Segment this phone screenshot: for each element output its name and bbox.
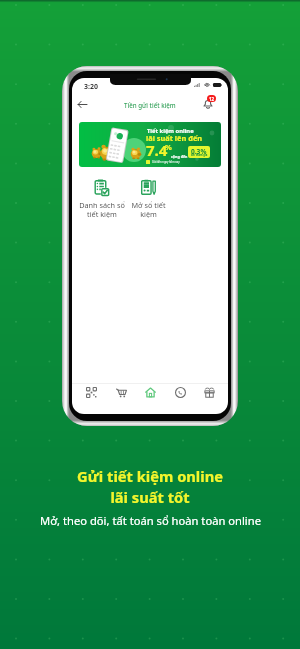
- staticText: Gửi tiết kiệm online: [77, 466, 223, 486]
- staticText: %: [165, 142, 172, 152]
- staticText: Mở sổ tiết kiệm: [131, 200, 166, 219]
- staticText: khi tham gia: [191, 153, 208, 157]
- staticText: Danh sách sổ tiết kiệm: [79, 200, 125, 219]
- staticText: Mở, theo dõi, tất toán sổ hoàn toàn onli…: [40, 513, 261, 528]
- button[interactable]: Mở sổ tiết kiệm: [125, 179, 172, 219]
- button[interactable]: Scan QR: [79, 384, 103, 401]
- button[interactable]: Back: [76, 98, 89, 111]
- staticText: lãi suất tốt: [110, 487, 190, 507]
- button[interactable]: Gifts: [197, 384, 221, 401]
- staticText: Tiết kiệm online: [147, 127, 194, 135]
- staticText: 3:20: [84, 82, 98, 92]
- button[interactable]: Shop: [109, 384, 133, 401]
- button[interactable]: Danh sách sổ tiết kiệm: [78, 179, 125, 219]
- staticText: 0.3%: [191, 147, 207, 156]
- staticText: Gửi tiền ngay hôm nay: [152, 160, 180, 164]
- staticText: 7.4: [146, 140, 168, 160]
- button[interactable]: Home: [138, 384, 162, 401]
- button[interactable]: Tiết kiệm online: [79, 122, 221, 167]
- staticText: cộng đến: [171, 154, 188, 159]
- staticText: lãi suất lên đến: [146, 133, 203, 143]
- button[interactable]: Notifications: [203, 95, 216, 109]
- button[interactable]: Call: [168, 384, 192, 401]
- staticText: Tiền gửi tiết kiệm: [124, 101, 176, 109]
- staticText: 12: [209, 96, 215, 102]
